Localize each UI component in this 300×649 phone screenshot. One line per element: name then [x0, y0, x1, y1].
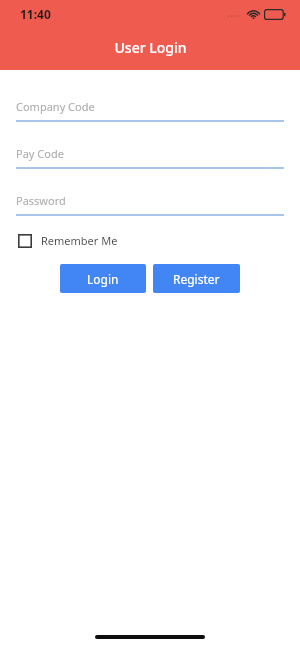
- button[interactable]: Pay Code: [16, 146, 284, 169]
- staticText: Remember Me: [41, 233, 118, 248]
- staticText: Company Code: [16, 99, 95, 114]
- staticText: Pay Code: [16, 146, 64, 161]
- staticText: Password: [16, 193, 66, 208]
- staticText: Register: [173, 271, 220, 287]
- button[interactable]: Company Code: [16, 99, 284, 122]
- staticText: Login: [87, 271, 119, 287]
- staticText: 11:40: [20, 6, 51, 22]
- button[interactable]: Login: [60, 264, 146, 293]
- staticText: User Login: [114, 38, 187, 57]
- button[interactable]: Remember Me: [16, 229, 120, 252]
- button[interactable]: Register: [153, 264, 240, 293]
- button[interactable]: Password: [16, 193, 284, 216]
